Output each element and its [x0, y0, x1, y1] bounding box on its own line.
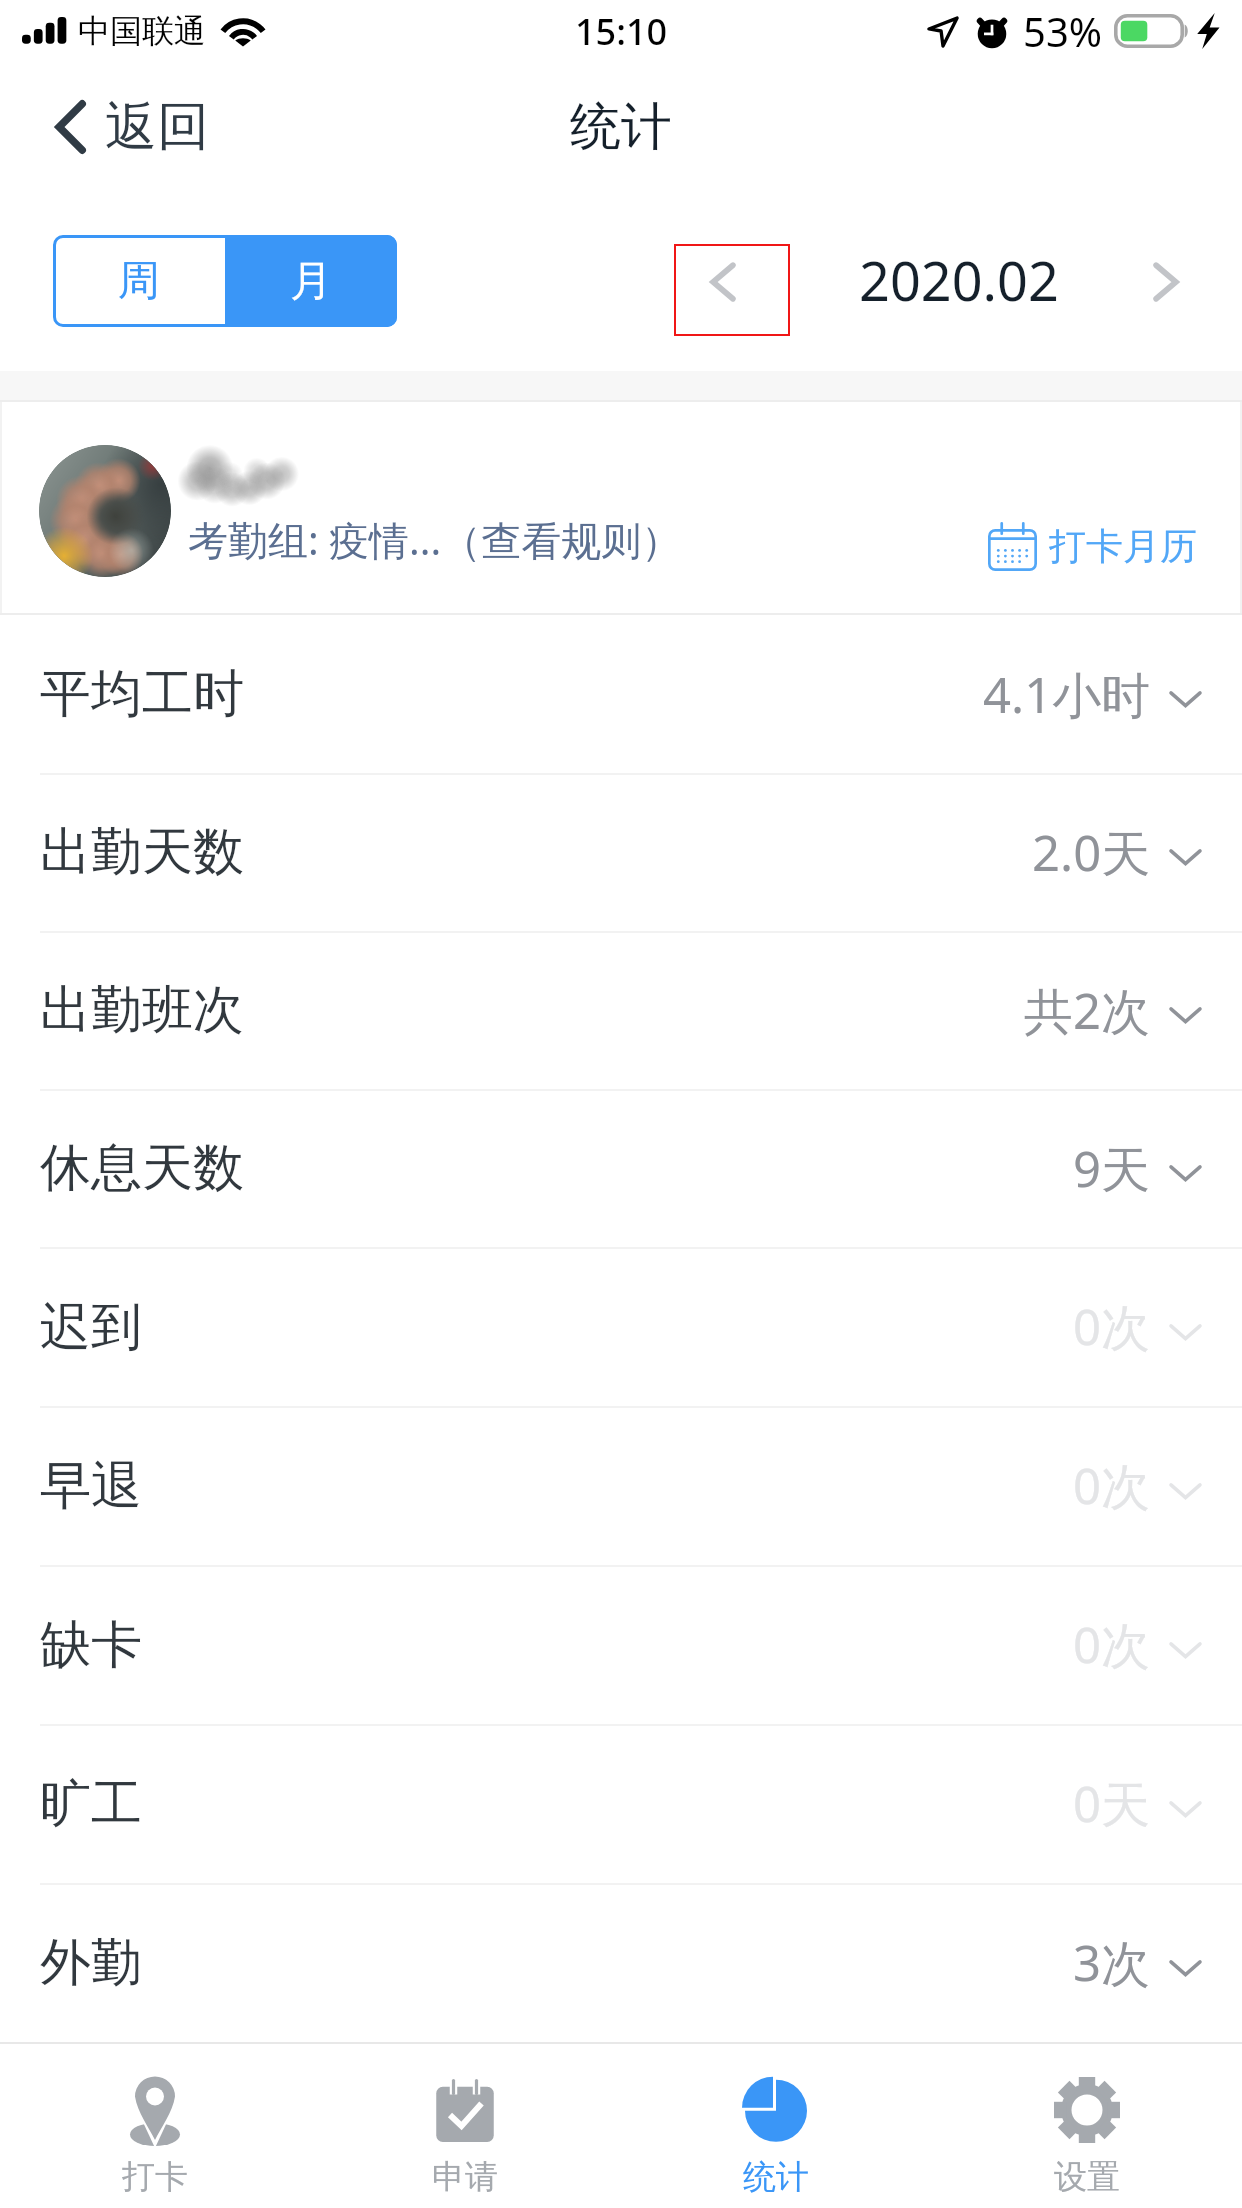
staticText: 9天 [1073, 1135, 1151, 1202]
staticText: 休息天数 [40, 1136, 244, 1200]
button[interactable]: 月 [225, 235, 397, 327]
staticText: 中国联通 [78, 11, 206, 51]
staticText: 2.0天 [1032, 819, 1151, 886]
button[interactable]: 休息天数 [0, 1089, 1242, 1247]
button[interactable]: 考勤组: 疫情...（查看规则） [0, 402, 1242, 613]
staticText: 出勤班次 [40, 978, 244, 1042]
staticText: 打卡月历 [1049, 523, 1197, 570]
button[interactable]: 早退 [0, 1406, 1242, 1565]
button[interactable]: 返回 [41, 84, 221, 170]
staticText: 早退 [40, 1454, 142, 1518]
button[interactable]: 出勤天数 [0, 773, 1242, 931]
staticText: 统计 [570, 95, 672, 159]
staticText: 平均工时 [40, 662, 244, 726]
staticText: 月 [290, 255, 332, 308]
staticText: 53% [1023, 4, 1102, 58]
button[interactable]: 缺卡 [0, 1565, 1242, 1724]
staticText: 15:10 [575, 7, 668, 56]
button[interactable]: 外勤 [0, 1883, 1242, 2042]
staticText: 外勤 [40, 1931, 142, 1995]
staticText: 0天 [1073, 1770, 1151, 1837]
staticText: 设置 [1054, 2156, 1120, 2198]
button[interactable]: 上个月 [674, 244, 790, 336]
staticText: 3次 [1073, 1929, 1151, 1996]
staticText: 共2次 [1024, 977, 1151, 1044]
button[interactable]: 下个月 [1126, 232, 1206, 332]
staticText: 申请 [432, 2156, 498, 2198]
button[interactable]: 设置 [931, 2044, 1242, 2208]
staticText: 0次 [1073, 1611, 1151, 1678]
button[interactable]: 平均工时 [0, 615, 1242, 773]
staticText: 旷工 [40, 1772, 142, 1836]
staticText: 考勤组: 疫情...（查看规则） [188, 512, 682, 567]
staticText: 出勤天数 [40, 820, 244, 884]
staticText: 周 [118, 255, 160, 308]
staticText: 缺卡 [40, 1613, 142, 1677]
button[interactable]: 出勤班次 [0, 931, 1242, 1089]
staticText: 迟到 [40, 1295, 142, 1359]
button[interactable]: 周 [53, 235, 225, 327]
button[interactable]: 申请 [310, 2044, 620, 2208]
button[interactable]: 统计 [620, 2044, 931, 2208]
staticText: 0次 [1073, 1293, 1151, 1360]
staticText: 返回 [105, 94, 209, 160]
staticText: 打卡 [122, 2156, 188, 2198]
staticText: 2020.02 [859, 243, 1059, 317]
staticText: 0次 [1073, 1452, 1151, 1519]
staticText: 4.1小时 [983, 661, 1151, 728]
staticText: 统计 [743, 2156, 809, 2198]
button[interactable]: 旷工 [0, 1724, 1242, 1883]
button[interactable]: 打卡月历 [980, 512, 1205, 581]
button[interactable]: 迟到 [0, 1247, 1242, 1406]
button[interactable]: 打卡 [0, 2044, 310, 2208]
